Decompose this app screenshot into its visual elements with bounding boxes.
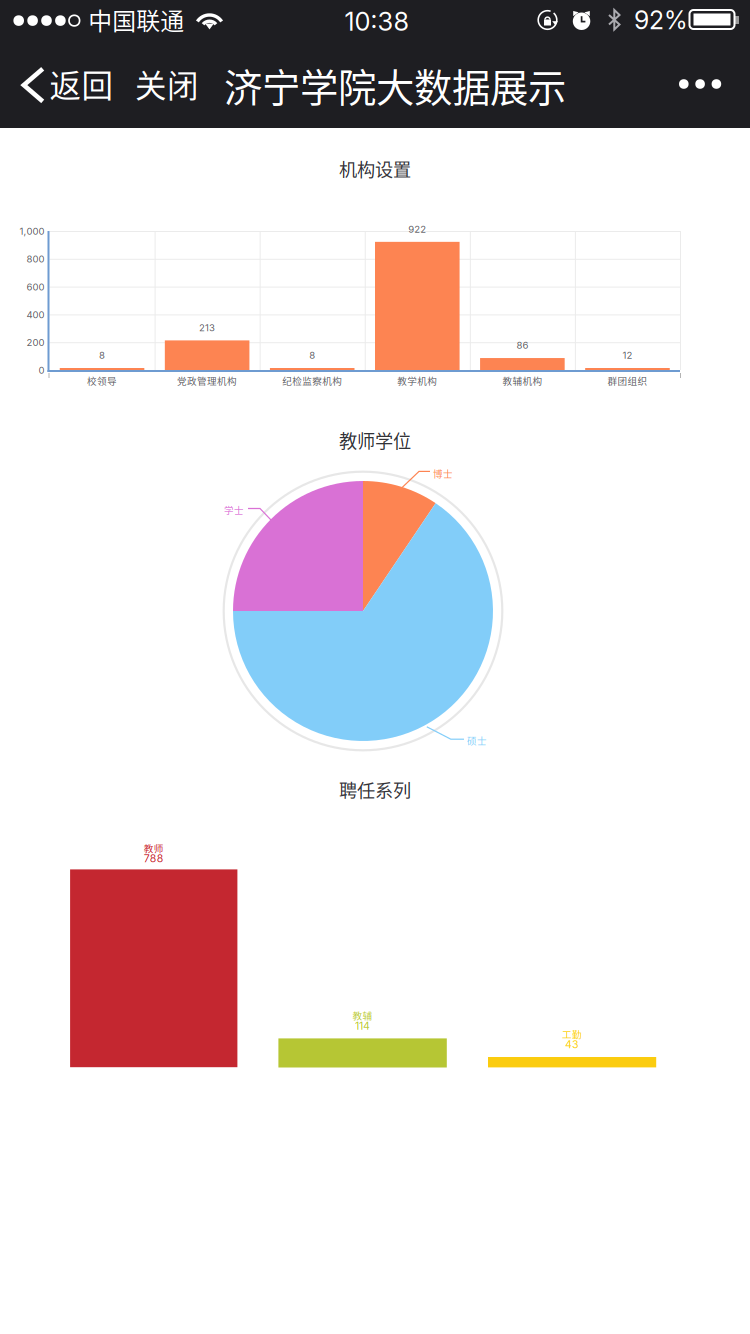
staticText: 86 (516, 339, 528, 351)
staticText: 济宁学院大数据展示 (224, 57, 566, 113)
staticText: 600 (26, 281, 44, 293)
staticText: 教辅 (353, 1008, 373, 1022)
staticText: 教师学位 (339, 427, 411, 453)
staticText: 1,000 (19, 225, 44, 237)
staticText: 213 (199, 322, 215, 333)
staticText: 12 (622, 349, 632, 361)
staticText: 教辅机构 (502, 373, 542, 387)
staticText: 800 (26, 253, 44, 265)
staticText: 中国联通 (88, 2, 184, 37)
staticText: 党政管理机构 (177, 373, 237, 387)
staticText: 群团组织 (607, 373, 647, 387)
staticText: 788 (144, 852, 164, 865)
staticText: 聘任系列 (339, 776, 411, 803)
staticText: 硕士 (467, 733, 487, 747)
button[interactable]: 关闭 (126, 52, 206, 116)
staticText: 400 (26, 309, 44, 320)
staticText: 博士 (433, 466, 453, 480)
staticText: 返回 (49, 61, 113, 107)
staticText: 学士 (224, 503, 244, 517)
staticText: 10:38 (344, 6, 409, 37)
staticText: 8 (309, 349, 315, 361)
staticText: 200 (26, 337, 44, 348)
button[interactable]: More options (669, 56, 745, 112)
staticText: 8 (99, 349, 105, 361)
staticText: 纪检监察机构 (282, 373, 342, 387)
staticText: 校领导 (87, 373, 117, 387)
button[interactable]: 返回 (19, 52, 127, 116)
staticText: 0 (38, 364, 44, 376)
staticText: 教学机构 (397, 373, 437, 387)
staticText: 关闭 (135, 61, 199, 107)
staticText: 922 (408, 223, 426, 235)
staticText: 92% (634, 5, 688, 35)
staticText: 43 (565, 1038, 579, 1051)
staticText: 教师 (144, 841, 164, 855)
staticText: 机构设置 (339, 155, 411, 182)
staticText: 工勤 (562, 1027, 582, 1041)
staticText: 114 (355, 1019, 370, 1032)
